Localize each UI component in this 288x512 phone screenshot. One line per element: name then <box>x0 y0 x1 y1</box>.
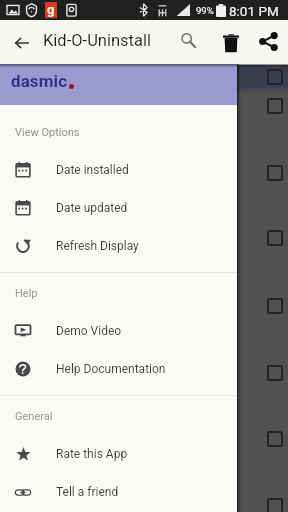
staticText: Rate this App <box>56 447 128 461</box>
staticText: Help Documentation <box>56 362 166 376</box>
button[interactable]: Search <box>170 20 207 65</box>
button[interactable]: Tell a friend <box>0 473 237 511</box>
staticText: Kid-O-Uninstall <box>43 31 151 50</box>
staticText: Date updated <box>56 201 128 215</box>
button[interactable]: Back <box>4 20 40 65</box>
button[interactable]: Rate this App <box>0 435 237 473</box>
staticText: 99% <box>196 5 214 16</box>
button[interactable]: Date updated <box>0 189 237 227</box>
staticText: View Options <box>15 126 80 139</box>
staticText: 8:01 PM <box>229 3 279 19</box>
button[interactable]: Date installed <box>0 151 237 189</box>
button[interactable]: Refresh Display <box>0 227 237 265</box>
staticText: General <box>15 410 53 423</box>
button[interactable]: Help Documentation <box>0 350 237 388</box>
staticText: Tell a friend <box>56 485 119 499</box>
button[interactable]: Demo Video <box>0 312 237 350</box>
staticText: Demo Video <box>56 324 122 338</box>
staticText: g <box>47 2 55 17</box>
button[interactable]: Delete <box>214 20 251 65</box>
staticText: Help <box>15 287 38 300</box>
staticText: Date installed <box>56 163 129 177</box>
staticText: Refresh Display <box>56 239 139 253</box>
staticText: dasmic <box>11 71 68 91</box>
button[interactable]: Share <box>250 20 287 65</box>
